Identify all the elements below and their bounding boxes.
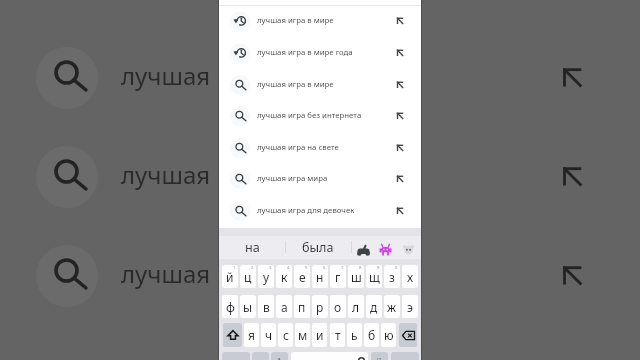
staticText: лучшая игра без интернета <box>257 110 362 121</box>
staticText: лучшая и <box>121 158 232 191</box>
button[interactable]: лучшая игра в мире года <box>219 37 421 69</box>
staticText: с <box>283 327 289 343</box>
button[interactable]: лучшая игра в мире <box>219 69 421 101</box>
button[interactable]: ш <box>348 265 364 288</box>
button[interactable]: ц <box>240 265 256 288</box>
staticText: 3 <box>269 265 272 271</box>
button[interactable]: й <box>222 265 238 288</box>
staticText: была <box>302 239 334 256</box>
staticText: 9 <box>377 265 380 271</box>
button[interactable]: на <box>229 236 275 259</box>
button[interactable]: р <box>312 295 328 318</box>
staticText: з <box>389 269 395 285</box>
button[interactable]: ч <box>261 323 276 347</box>
button[interactable]: ь <box>347 323 362 347</box>
staticText: я <box>248 327 255 343</box>
staticText: ф <box>226 299 235 315</box>
staticText: ч <box>265 327 273 343</box>
button[interactable]: лучшая игра без интернета <box>219 100 421 132</box>
button[interactable]: ы <box>240 295 256 318</box>
button[interactable]: лучшая игра для девочек <box>219 195 421 227</box>
staticText: а <box>281 299 288 315</box>
staticText: й <box>226 269 234 285</box>
button[interactable]: ю <box>381 323 396 347</box>
button[interactable]: была <box>289 236 347 259</box>
button[interactable]: я <box>244 323 259 347</box>
button[interactable]: Insert suggestion <box>391 202 409 220</box>
staticText: лучшая и <box>121 59 232 92</box>
button[interactable]: Backspace <box>399 323 417 347</box>
staticText: лучшая игра в мире <box>257 79 334 90</box>
staticText: лучшая игра для девочек <box>257 205 355 216</box>
button[interactable]: лучшая игра на свете <box>219 132 421 164</box>
staticText: п <box>298 299 306 315</box>
button[interactable]: лучшая игра в мире <box>219 5 421 37</box>
staticText: лучшая и <box>121 257 232 290</box>
button[interactable]: л <box>348 295 364 318</box>
staticText: 1 <box>233 265 236 271</box>
button[interactable]: н <box>312 265 328 288</box>
staticText: ю <box>384 327 394 343</box>
button[interactable]: Emoji <box>402 243 415 256</box>
staticText: е <box>299 269 306 285</box>
button[interactable]: с <box>278 323 293 347</box>
button[interactable]: Space <box>291 352 368 360</box>
button[interactable]: к <box>276 265 292 288</box>
button[interactable]: э <box>402 295 418 318</box>
button[interactable]: т <box>330 323 345 347</box>
button[interactable]: Period <box>371 352 388 360</box>
staticText: в <box>263 299 270 315</box>
button[interactable]: Shift <box>223 323 242 347</box>
staticText: б <box>368 327 376 343</box>
staticText: ж <box>387 299 397 315</box>
button[interactable]: Change language <box>271 352 288 360</box>
staticText: 6 <box>323 265 326 271</box>
button[interactable]: Emoji <box>379 243 392 256</box>
staticText: 5 <box>305 265 308 271</box>
button[interactable]: з <box>384 265 400 288</box>
button[interactable]: м <box>295 323 310 347</box>
button[interactable]: ж <box>384 295 400 318</box>
staticText: ш <box>351 269 362 285</box>
button[interactable]: о <box>330 295 346 318</box>
staticText: д <box>370 299 378 315</box>
staticText: к <box>281 269 288 285</box>
staticText: лучшая игра в мире года <box>257 47 353 58</box>
button[interactable]: Insert suggestion <box>391 170 409 188</box>
button[interactable]: Emoji <box>357 243 370 256</box>
staticText: э <box>407 299 413 315</box>
staticText: ь <box>351 327 358 343</box>
button[interactable]: Insert suggestion <box>391 76 409 94</box>
button[interactable]: д <box>366 295 382 318</box>
button[interactable]: щ <box>366 265 382 288</box>
staticText: х <box>407 269 414 285</box>
staticText: о <box>334 299 342 315</box>
button[interactable]: у <box>258 265 274 288</box>
button[interactable]: б <box>364 323 379 347</box>
staticText: м <box>298 327 308 343</box>
button[interactable]: ф <box>222 295 238 318</box>
button[interactable]: Insert suggestion <box>391 139 409 157</box>
button[interactable]: х <box>402 265 418 288</box>
button[interactable]: и <box>312 323 327 347</box>
staticText: 0 <box>395 265 398 271</box>
button[interactable]: е <box>294 265 310 288</box>
staticText: ц <box>244 269 252 285</box>
button[interactable]: г <box>330 265 346 288</box>
button[interactable]: Insert suggestion <box>391 107 409 125</box>
staticText: !? <box>377 356 382 360</box>
staticText: т <box>335 327 341 343</box>
button[interactable]: п <box>294 295 310 318</box>
button[interactable]: а <box>276 295 292 318</box>
staticText: ы <box>243 299 253 315</box>
staticText: и <box>316 327 324 343</box>
staticText: на <box>245 239 260 256</box>
button[interactable]: Insert suggestion <box>391 44 409 62</box>
staticText: 4 <box>287 265 290 271</box>
button[interactable]: в <box>258 295 274 318</box>
button[interactable]: лучшая игра мира <box>219 163 421 195</box>
button[interactable]: Insert suggestion <box>391 12 409 30</box>
